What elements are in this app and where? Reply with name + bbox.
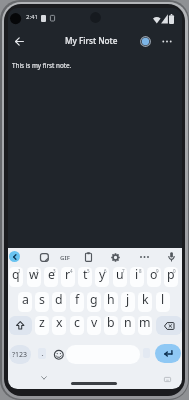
staticText: z (39, 316, 45, 331)
button[interactable] (12, 34, 26, 48)
staticText: t (83, 267, 88, 283)
button[interactable]: b (104, 316, 118, 335)
button[interactable]: p (164, 267, 178, 287)
staticText: 0 (173, 268, 176, 274)
staticText: l (161, 292, 165, 308)
staticText: GIF (60, 253, 70, 261)
button[interactable] (156, 316, 182, 335)
button[interactable]: k (138, 292, 152, 312)
button[interactable]: a (18, 292, 32, 312)
button[interactable]: n (121, 316, 135, 335)
button[interactable]: v (87, 316, 101, 335)
button[interactable] (110, 252, 120, 262)
staticText: 7 (122, 268, 125, 274)
button[interactable]: i (130, 267, 144, 287)
staticText: , (41, 348, 44, 356)
staticText: x (56, 316, 63, 331)
button[interactable] (66, 345, 140, 364)
button[interactable] (9, 251, 20, 262)
staticText: 5 (87, 268, 90, 274)
staticText: u (116, 267, 124, 283)
staticText: f (75, 292, 80, 308)
button[interactable]: r (61, 267, 75, 287)
button[interactable]: z (35, 316, 49, 335)
staticText: y (99, 267, 106, 283)
button[interactable]: , (38, 348, 46, 359)
staticText: r (65, 267, 71, 283)
button[interactable]: x (52, 316, 66, 335)
button[interactable]: e (44, 267, 58, 287)
staticText: 3 (53, 268, 56, 274)
button[interactable] (160, 34, 174, 48)
staticText: 2:41 (26, 13, 38, 21)
button[interactable] (9, 316, 32, 335)
button[interactable] (83, 251, 93, 262)
staticText: h (107, 292, 115, 308)
button[interactable]: h (104, 292, 118, 312)
button[interactable]: g (87, 292, 101, 312)
staticText: 6 (104, 268, 107, 274)
button[interactable]: t (78, 267, 92, 287)
staticText: q (12, 267, 20, 283)
button[interactable]: l (156, 292, 170, 312)
staticText: b (107, 316, 115, 331)
staticText: n (124, 316, 132, 331)
staticText: 9 (156, 268, 159, 274)
staticText: v (91, 316, 98, 331)
staticText: m (139, 316, 151, 331)
button[interactable]: d (52, 292, 66, 312)
staticText: a (22, 292, 29, 308)
staticText: w (29, 267, 39, 283)
button[interactable] (39, 252, 49, 262)
staticText: g (90, 292, 98, 308)
staticText: This is my first note. (12, 61, 72, 70)
staticText: o (150, 267, 158, 283)
button[interactable] (53, 349, 65, 361)
button[interactable] (139, 251, 150, 262)
button[interactable]: f (70, 292, 84, 312)
staticText: ?123 (12, 350, 28, 360)
staticText: 1 (18, 268, 21, 274)
button[interactable]: j (121, 292, 135, 312)
button[interactable]: q (9, 267, 23, 287)
button[interactable] (138, 34, 152, 48)
staticText: My First Note (65, 35, 118, 46)
button[interactable]: GIF (59, 251, 71, 262)
staticText: e (48, 267, 55, 283)
button[interactable]: u (113, 267, 127, 287)
staticText: 2 (36, 268, 39, 274)
staticText: c (74, 316, 80, 331)
staticText: 4 (70, 268, 73, 274)
staticText: d (55, 292, 63, 308)
button[interactable]: w (27, 267, 41, 287)
button[interactable]: o (147, 267, 161, 287)
staticText: 8 (139, 268, 142, 274)
button[interactable] (155, 344, 181, 363)
button[interactable]: s (35, 292, 49, 312)
staticText: s (39, 292, 45, 308)
button[interactable]: y (95, 267, 109, 287)
staticText: j (126, 292, 130, 308)
staticText: k (142, 292, 149, 308)
button[interactable]: c (70, 316, 84, 335)
staticText: p (167, 267, 175, 283)
button[interactable] (166, 251, 176, 262)
button[interactable]: m (138, 316, 152, 335)
button[interactable]: ?123 (9, 345, 31, 364)
staticText: i (135, 267, 139, 283)
